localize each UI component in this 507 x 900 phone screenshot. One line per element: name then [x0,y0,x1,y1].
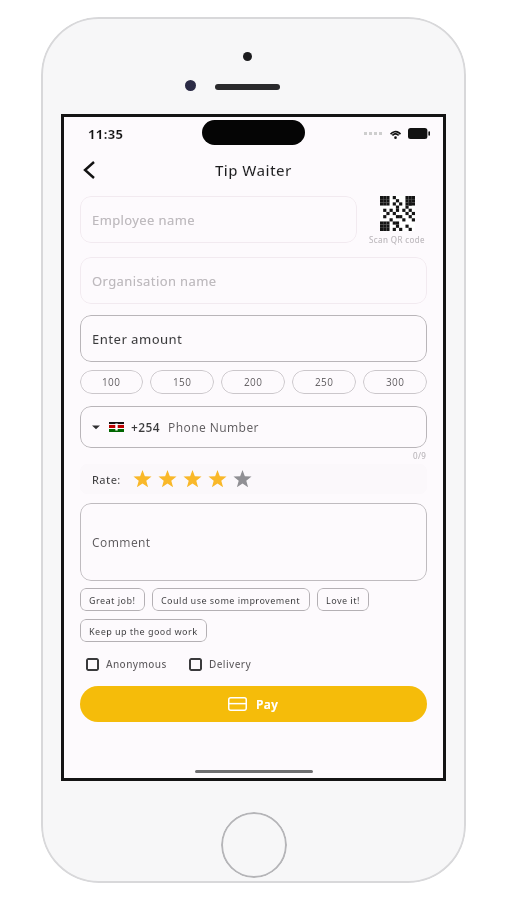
staticText: Great job! [89,594,136,606]
button[interactable]: 100 [80,370,143,394]
button[interactable]: Rate: [80,464,427,494]
button[interactable]: Scan QR code [367,196,427,245]
staticText: 11:35 [88,125,124,143]
button[interactable]: +254 [80,406,427,448]
button[interactable]: Could use some improvement [152,588,310,611]
button[interactable]: Love it! [317,588,369,611]
button[interactable]: Rate 3 stars [183,470,202,489]
staticText: Tip Waiter [215,160,292,180]
staticText: Organisation name [92,272,217,290]
button[interactable]: Great job! [80,588,145,611]
staticText: Rate: [92,472,121,487]
staticText: Keep up the good work [89,625,198,637]
button[interactable]: Keep up the good work [80,619,207,642]
button[interactable]: Rate 1 stars [133,470,152,489]
staticText: 200 [244,375,263,389]
staticText: Pay [256,696,279,712]
button[interactable]: 200 [221,370,285,394]
button[interactable]: Organisation name [80,257,427,304]
button[interactable]: 250 [292,370,356,394]
staticText: Delivery [209,657,252,671]
staticText: Enter amount [92,330,183,348]
button[interactable]: Anonymous [86,654,167,674]
button[interactable]: Back [74,155,104,185]
staticText: 150 [173,375,192,389]
button[interactable]: Rate 5 stars [233,470,252,489]
button[interactable]: Rate 4 stars [208,470,227,489]
staticText: Employee name [92,211,196,229]
button[interactable]: Comment [80,503,427,581]
staticText: Comment [92,534,151,550]
button[interactable]: Employee name [80,196,357,243]
button[interactable]: Rate 2 stars [158,470,177,489]
staticText: Phone Number [168,419,259,435]
staticText: 300 [386,375,405,389]
staticText: +254 [131,419,161,435]
button[interactable]: Enter amount [80,315,427,362]
button[interactable]: 300 [363,370,427,394]
button[interactable]: Delivery [189,654,252,674]
staticText: Could use some improvement [161,594,301,606]
staticText: 250 [315,375,334,389]
button[interactable]: Pay [80,686,427,722]
staticText: Love it! [326,594,360,606]
staticText: Anonymous [106,657,167,671]
staticText: 0/9 [413,450,427,461]
staticText: 100 [102,375,121,389]
staticText: Scan QR code [369,234,425,245]
button[interactable]: 150 [150,370,214,394]
